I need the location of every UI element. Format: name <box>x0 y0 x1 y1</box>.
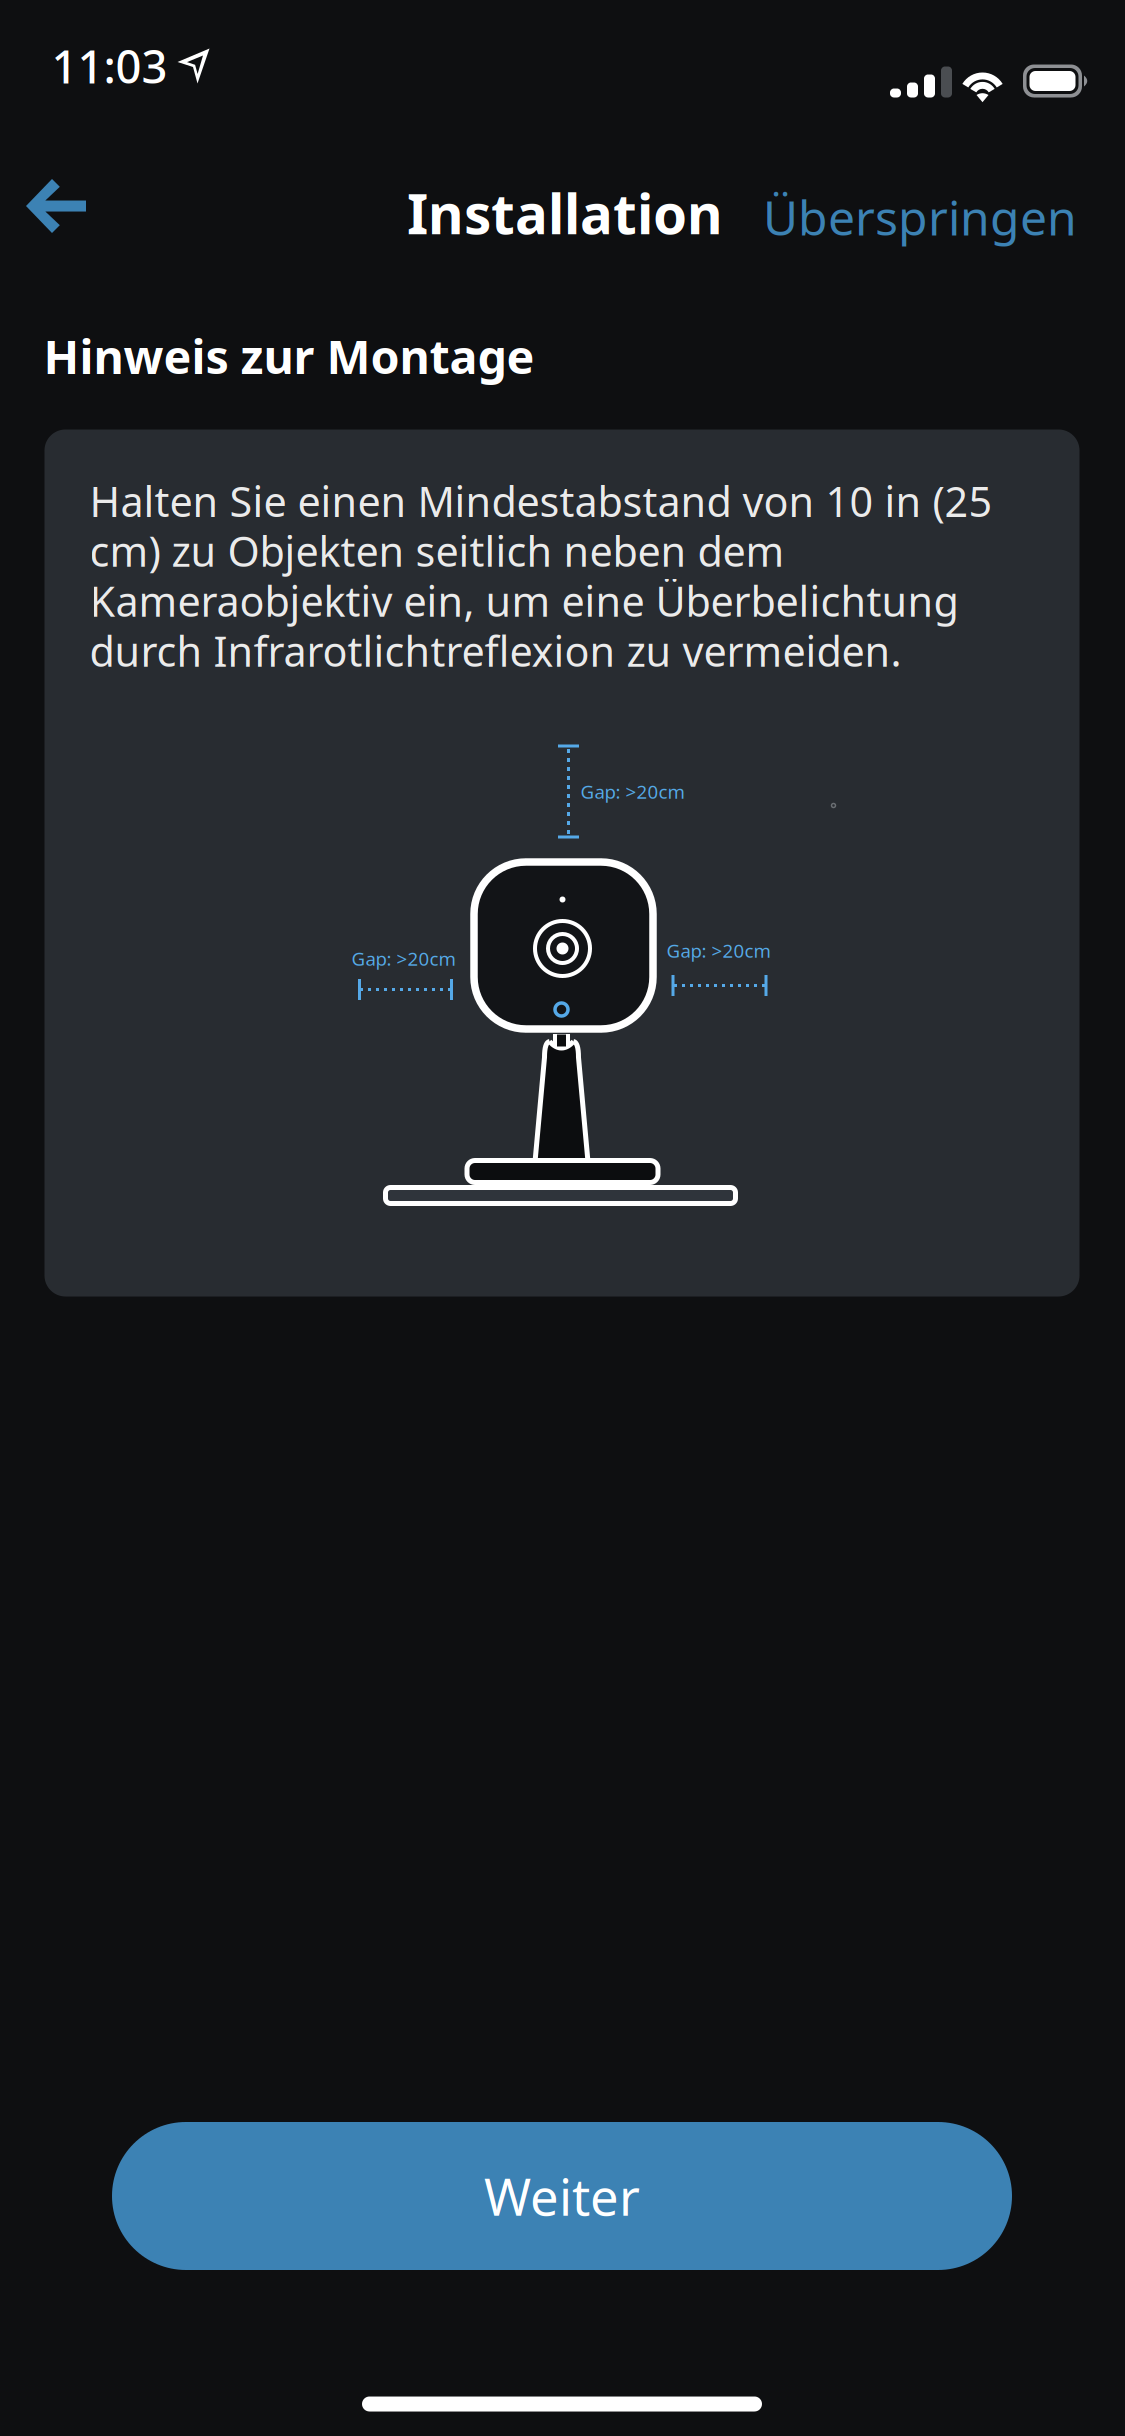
staticText: Gap: >20cm <box>351 946 455 971</box>
staticText: Halten Sie einen Mindestabstand von 10 i… <box>89 473 992 678</box>
button[interactable]: Weiter <box>112 2122 1012 2270</box>
button[interactable]: Überspringen <box>737 162 1077 272</box>
staticText: 11:03 <box>51 36 167 96</box>
staticText: Gap: >20cm <box>580 779 684 804</box>
staticText: Hinweis zur Montage <box>43 325 534 387</box>
button[interactable]: Back <box>0 146 121 266</box>
staticText: Gap: >20cm <box>666 938 770 963</box>
staticText: Weiter <box>484 2162 640 2230</box>
staticText: Installation <box>407 177 723 249</box>
staticText: Überspringen <box>763 185 1077 249</box>
